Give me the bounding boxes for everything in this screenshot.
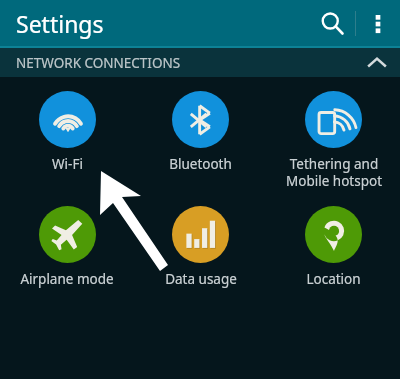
button[interactable]: Data usage [134,202,267,288]
button[interactable]: Location [267,202,400,288]
staticText: Data usage [165,270,237,288]
button[interactable]: Airplane mode [0,202,134,288]
button[interactable]: Bluetooth [134,87,267,173]
staticText: NETWORK CONNECTIONS [16,54,181,72]
button[interactable]: Wi-Fi [0,87,134,173]
staticText: Location [306,270,361,288]
staticText: Airplane mode [20,270,114,288]
staticText: Tethering and Mobile hotspot [286,155,382,190]
staticText: Settings [16,8,104,39]
button[interactable]: Tethering and Mobile hotspot [267,87,400,190]
button[interactable]: NETWORK CONNECTIONS [0,48,400,77]
staticText: Bluetooth [169,155,232,173]
staticText: Wi-Fi [52,155,83,173]
button[interactable]: More options [356,1,400,45]
button[interactable]: Search [309,0,355,46]
